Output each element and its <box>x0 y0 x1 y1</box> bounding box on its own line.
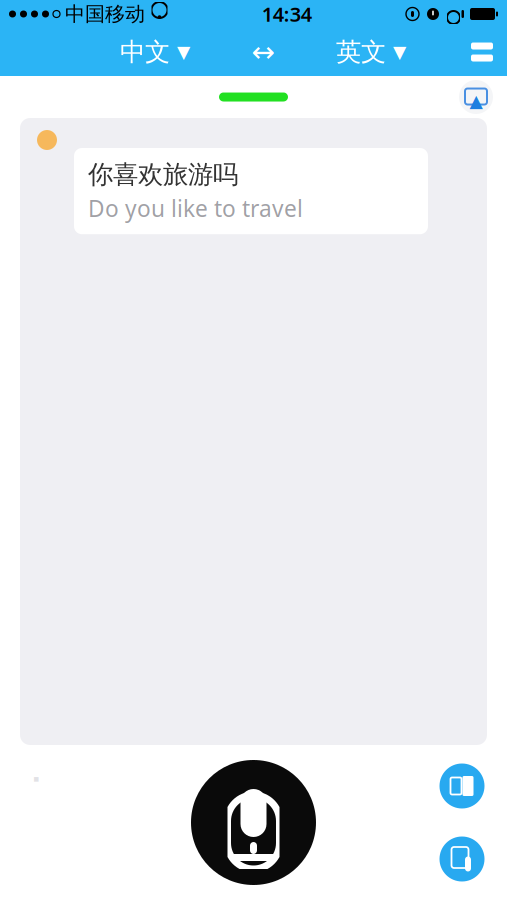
button[interactable]: Menu <box>457 32 507 72</box>
staticText: ↔ <box>251 36 274 68</box>
button[interactable]: Swap languages <box>241 35 285 69</box>
staticText: 中国移动 <box>65 2 145 26</box>
button[interactable]: Phrasebook <box>439 763 485 809</box>
staticText: 中文 <box>120 36 170 67</box>
staticText: ▼ <box>177 42 190 62</box>
button[interactable]: AirPlay <box>458 79 494 115</box>
staticText: Do you like to travel <box>88 193 303 223</box>
staticText: 14:34 <box>262 1 312 27</box>
button[interactable]: 中文 <box>110 30 200 73</box>
staticText: ▪ <box>33 773 39 784</box>
button[interactable]: 你喜欢旅游吗 <box>74 148 428 234</box>
staticText: ▲ <box>469 91 482 111</box>
button[interactable]: Record voice <box>191 760 316 885</box>
button[interactable]: 英文 <box>326 30 416 73</box>
button[interactable]: Text input <box>439 836 485 882</box>
staticText: ▼ <box>393 42 406 62</box>
staticText: 你喜欢旅游吗 <box>88 159 238 190</box>
staticText: 英文 <box>336 36 386 67</box>
